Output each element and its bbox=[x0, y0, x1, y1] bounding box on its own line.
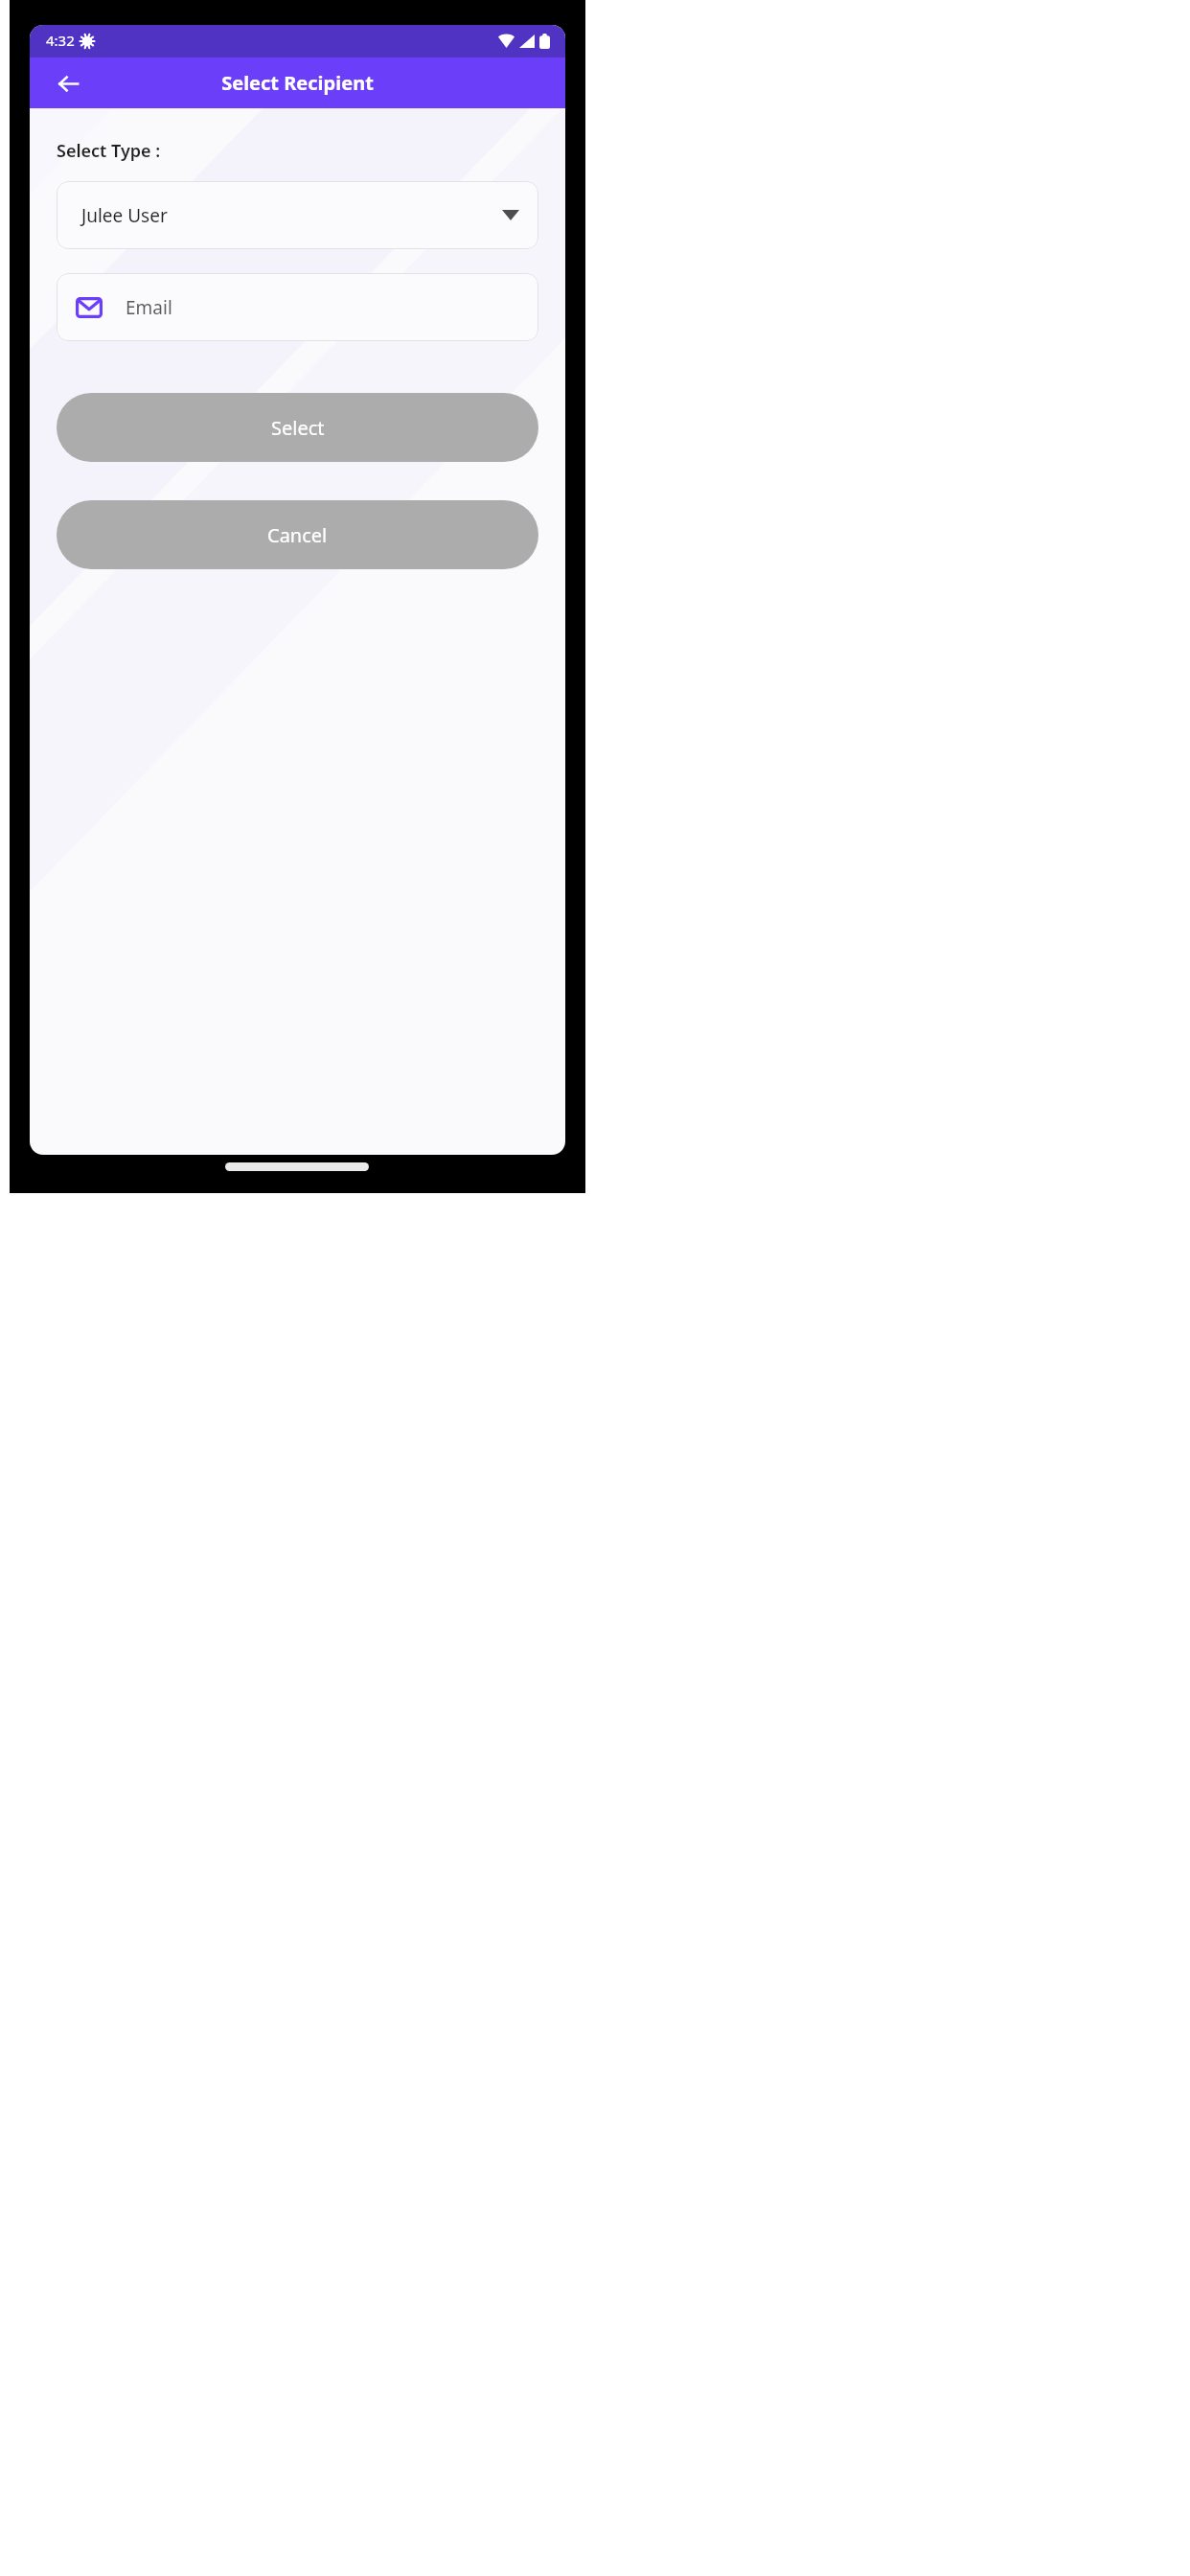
staticText: 4:32 bbox=[46, 31, 75, 50]
staticText: Julee User bbox=[81, 203, 168, 228]
button[interactable]: Julee User bbox=[57, 181, 538, 249]
staticText: Cancel bbox=[267, 522, 328, 548]
button[interactable]: Email bbox=[57, 273, 538, 341]
staticText: Select bbox=[271, 415, 325, 441]
staticText: Email bbox=[126, 295, 172, 320]
button[interactable]: Cancel bbox=[57, 500, 538, 569]
button[interactable]: Back bbox=[45, 60, 91, 106]
staticText: Select Type : bbox=[57, 139, 161, 163]
button[interactable]: Select bbox=[57, 393, 538, 462]
staticText: Select Recipient bbox=[221, 70, 374, 96]
